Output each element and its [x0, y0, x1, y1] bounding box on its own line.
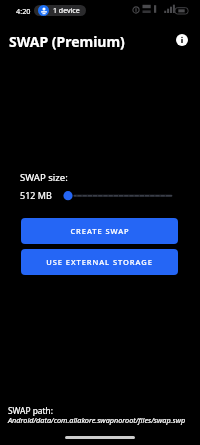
staticText: SWAP path: — [8, 405, 54, 416]
staticText: 512 MB — [20, 189, 52, 201]
staticText: USE EXTERNAL STORAGE — [46, 257, 153, 267]
staticText: Android/data/com.allakore.swapnoroot/fil… — [8, 415, 186, 425]
button[interactable]: SWAP size slider — [56, 186, 180, 205]
staticText: SWAP (Premium) — [9, 32, 125, 51]
staticText: 1 device — [53, 6, 80, 16]
staticText: CREATE SWAP — [70, 226, 130, 236]
button[interactable]: 1 device — [34, 5, 86, 16]
staticText: 4:20 — [16, 6, 31, 16]
button[interactable]: CREATE SWAP — [21, 218, 178, 244]
button[interactable]: Info — [176, 34, 188, 46]
button[interactable]: USE EXTERNAL STORAGE — [21, 249, 178, 275]
staticText: SWAP size: — [20, 171, 68, 184]
